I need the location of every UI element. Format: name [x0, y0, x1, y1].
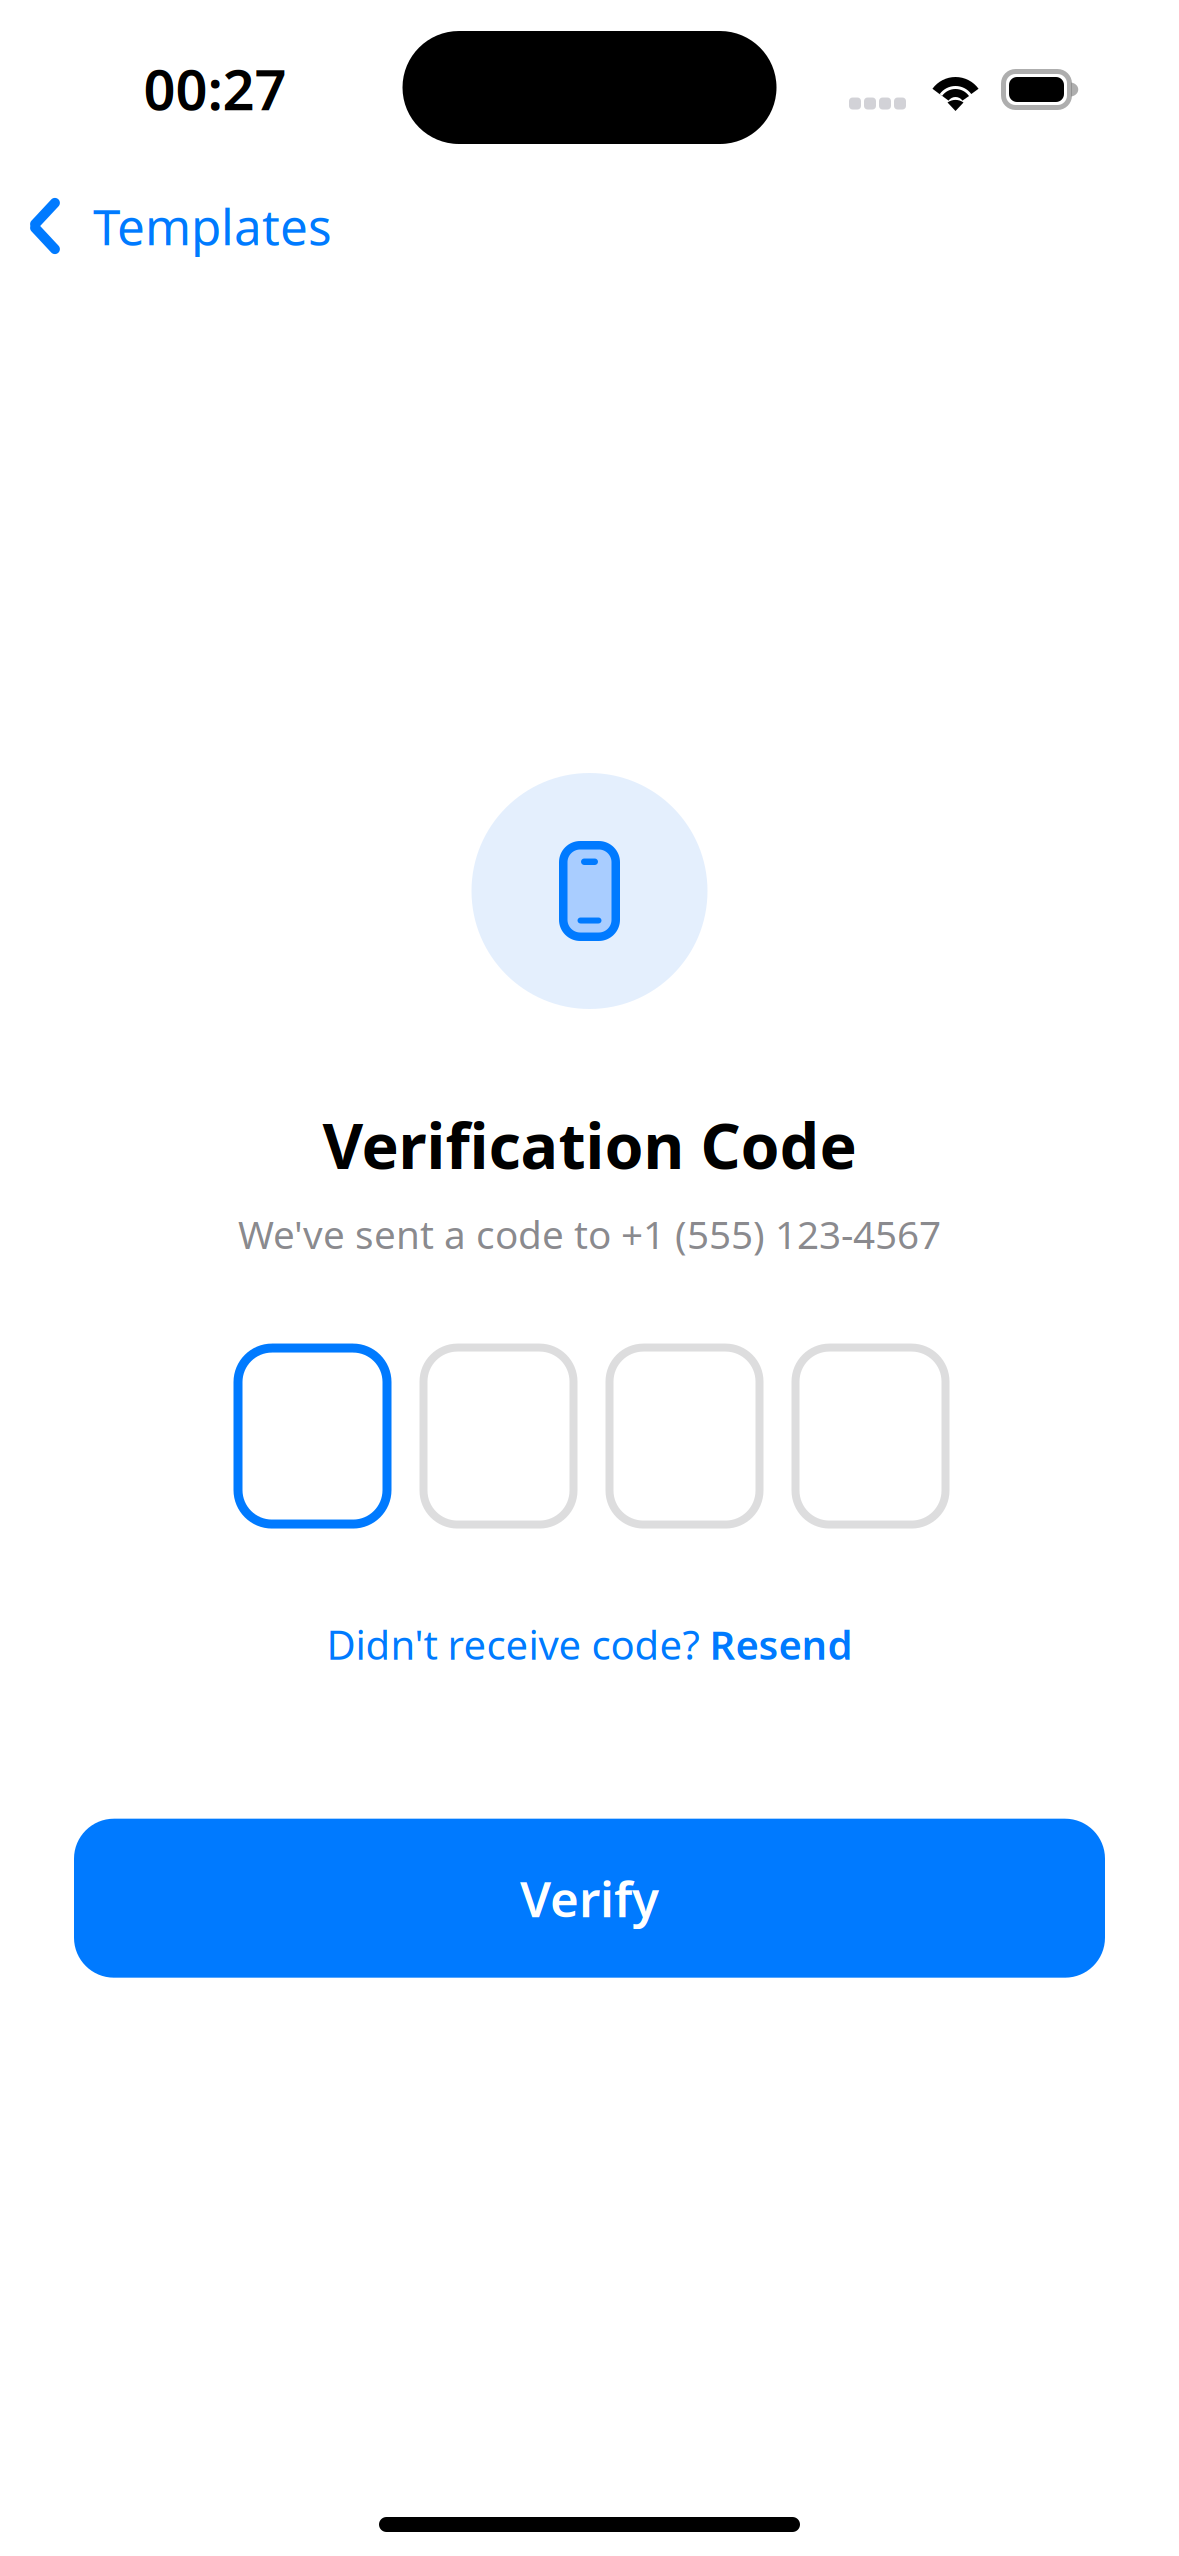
button[interactable]: Digit 1	[233, 1344, 391, 1529]
button[interactable]: Digit 3	[605, 1344, 763, 1529]
staticText: Didn't receive code?	[326, 1618, 709, 1671]
staticText: Verify	[520, 1865, 659, 1931]
staticText: Resend	[709, 1618, 852, 1671]
staticText: Templates	[93, 193, 332, 259]
button[interactable]: Digit 4	[791, 1344, 949, 1529]
staticText: 00:27	[143, 51, 286, 126]
staticText: We've sent a code to +1 (555) 123-4567	[238, 1208, 941, 1259]
button[interactable]: Templates	[0, 177, 356, 275]
button[interactable]: Verify	[74, 1819, 1105, 1978]
staticText: Verification Code	[322, 1103, 856, 1186]
button[interactable]: Didn't receive code?	[326, 1606, 852, 1683]
button[interactable]: Digit 2	[419, 1344, 577, 1529]
